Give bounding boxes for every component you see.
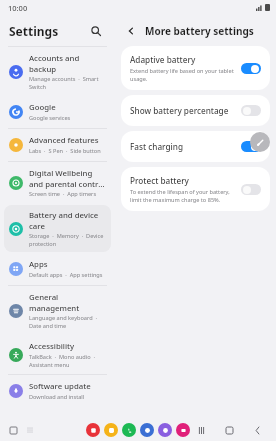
button[interactable]: App 0	[86, 423, 100, 437]
button[interactable]: Show battery percentage	[121, 95, 270, 126]
staticText: Download and install	[29, 393, 85, 401]
staticText: Settings	[9, 23, 59, 39]
staticText: Digital Wellbeing and parental controls	[29, 168, 107, 189]
staticText: General management	[29, 292, 107, 313]
staticText: Fast charging	[130, 141, 183, 152]
staticText: Language and keyboard · Date and time	[29, 314, 107, 329]
staticText: Apps	[29, 259, 48, 270]
staticText: Default apps · App settings	[29, 271, 103, 279]
button[interactable]: Home	[220, 421, 238, 439]
staticText: Google	[29, 102, 56, 113]
staticText: Software update	[29, 381, 91, 392]
button[interactable]: On	[241, 141, 261, 152]
button[interactable]: App 3	[140, 423, 154, 437]
staticText: Protect battery	[130, 175, 189, 186]
button[interactable]: Back	[122, 22, 140, 40]
button[interactable]: Recent apps panel	[7, 424, 19, 436]
staticText: Screen time · App timers	[29, 190, 97, 198]
button[interactable]: Off	[241, 105, 261, 116]
staticText: Advanced features	[29, 135, 99, 146]
staticText: Google services	[29, 114, 71, 122]
staticText: TalkBack · Mono audio · Assistant menu	[29, 353, 107, 368]
staticText: 10:00	[8, 3, 28, 13]
button[interactable]: App 2	[122, 423, 136, 437]
button[interactable]: General management	[4, 287, 111, 334]
button[interactable]: Software update	[4, 376, 111, 406]
button[interactable]: Accessibility	[4, 336, 111, 373]
button[interactable]: Back	[248, 421, 266, 439]
staticText: Show battery percentage	[130, 105, 229, 116]
staticText: More battery settings	[145, 24, 254, 38]
button[interactable]: Search	[86, 21, 106, 41]
button[interactable]: Apps	[4, 254, 111, 284]
button[interactable]: All apps	[24, 424, 36, 436]
staticText: Extend battery life based on your tablet…	[130, 67, 235, 82]
staticText: Manage accounts · Smart Switch	[29, 75, 107, 90]
button[interactable]: App 4	[158, 423, 172, 437]
button[interactable]: Battery and device care	[4, 205, 111, 252]
button[interactable]: App 1	[104, 423, 118, 437]
staticText: Accounts and backup	[29, 53, 107, 74]
button[interactable]: Off	[241, 184, 261, 195]
button[interactable]: Advanced features	[4, 130, 111, 160]
staticText: Adaptive battery	[130, 54, 196, 65]
staticText: To extend the lifespan of your battery, …	[130, 188, 235, 203]
button[interactable]: Google	[4, 97, 111, 127]
staticText: Storage · Memory · Device protection	[29, 232, 107, 247]
button[interactable]: App 5	[176, 423, 190, 437]
button[interactable]: Recents	[192, 421, 210, 439]
button[interactable]: On	[241, 63, 261, 74]
button[interactable]: Digital Wellbeing and parental controls	[4, 163, 111, 203]
button[interactable]: Edit	[250, 132, 270, 152]
staticText: Labs · S Pen · Side button	[29, 147, 101, 155]
button[interactable]: Adaptive battery	[121, 46, 270, 90]
button[interactable]: Protect battery	[121, 167, 270, 211]
button[interactable]: Fast charging	[121, 131, 270, 162]
staticText: Accessibility	[29, 341, 75, 352]
button[interactable]: Accounts and backup	[4, 48, 111, 95]
staticText: Battery and device care	[29, 210, 107, 231]
